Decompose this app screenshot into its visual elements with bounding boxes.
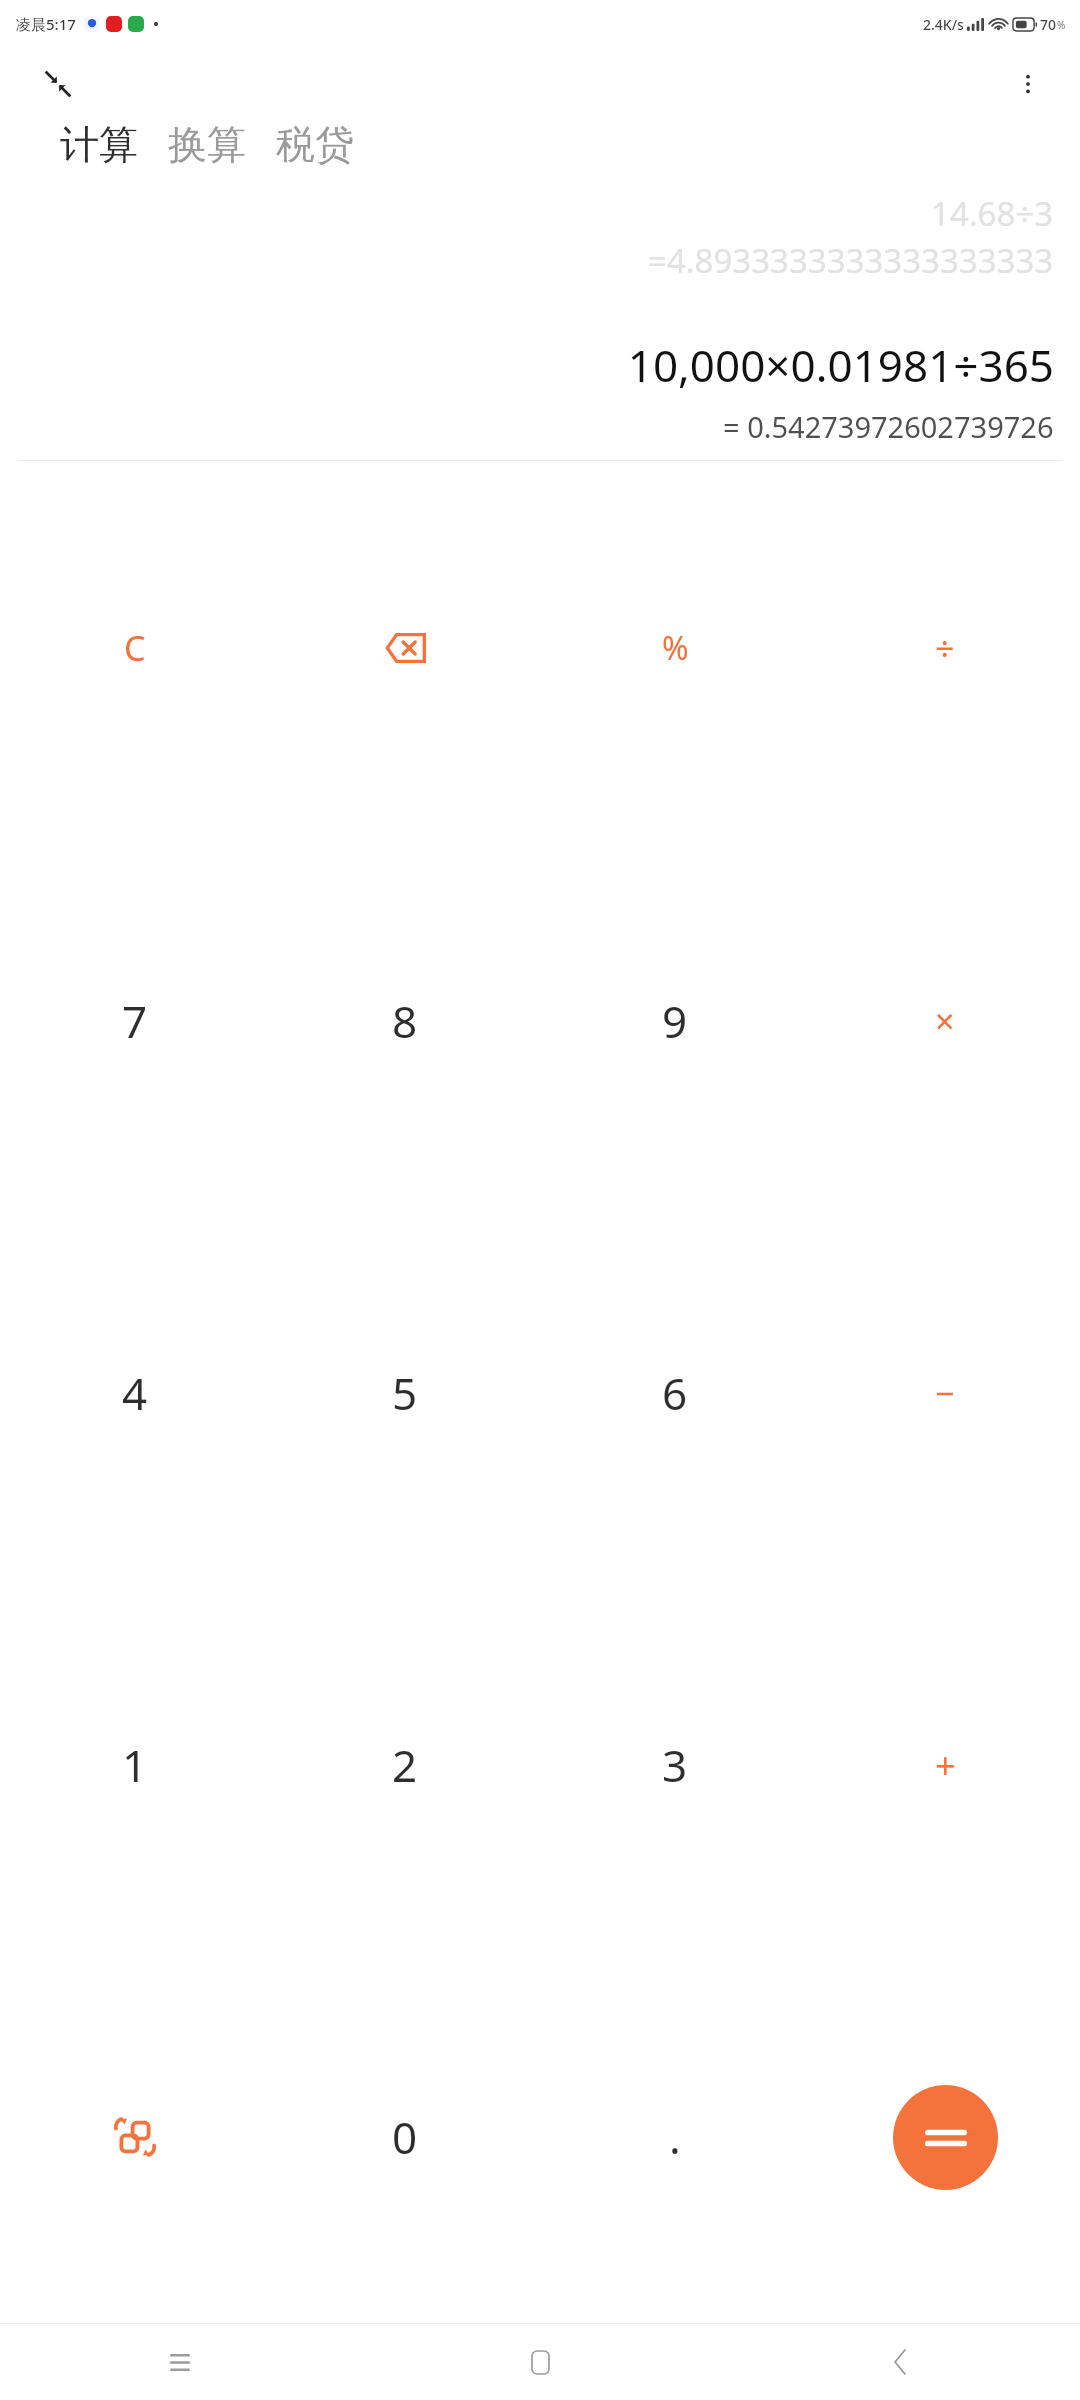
staticText: % (1057, 18, 1066, 32)
button[interactable]: Clear (0, 461, 270, 834)
button[interactable]: Minus (810, 1207, 1080, 1579)
button[interactable]: 7 (0, 834, 270, 1207)
button[interactable]: Multiply (810, 834, 1080, 1207)
staticText: 换算 (168, 120, 246, 169)
button[interactable]: Equals (810, 1951, 1080, 2323)
staticText: . (669, 2107, 681, 2167)
staticText: =4.8933333333333333333 (648, 238, 1054, 283)
button[interactable]: 换算 (168, 120, 246, 169)
staticText: C (124, 625, 146, 671)
staticText: % (662, 626, 689, 670)
staticText: 7 (122, 991, 148, 1051)
button[interactable]: Back (720, 2324, 1080, 2400)
staticText: ÷ (935, 625, 955, 671)
staticText: 6 (662, 1363, 688, 1423)
button[interactable]: 1 (0, 1579, 270, 1951)
staticText: × (935, 998, 955, 1044)
button[interactable]: 4 (0, 1207, 270, 1579)
button[interactable]: 2 (270, 1579, 540, 1951)
staticText: 2.4K/s (923, 15, 964, 34)
other: Unit convert (115, 2117, 155, 2157)
staticText: + (935, 1741, 956, 1790)
button[interactable]: Home (360, 2324, 720, 2400)
button[interactable]: Backspace (270, 461, 540, 834)
staticText: 14.68÷3 (931, 191, 1054, 236)
button[interactable]: More options (1004, 60, 1052, 108)
button[interactable]: 计算 (60, 120, 138, 169)
button[interactable]: Equals (893, 2085, 998, 2190)
button[interactable]: Plus (810, 1579, 1080, 1951)
button[interactable]: 税贷 (276, 120, 354, 169)
button[interactable]: Percent (540, 461, 810, 834)
staticText: 0 (392, 2107, 418, 2167)
staticText: 9 (662, 991, 688, 1051)
button[interactable]: Recents (0, 2324, 360, 2400)
staticText: 计算 (60, 120, 138, 169)
staticText: = 0.54273972602739726 (723, 407, 1054, 446)
button[interactable]: Unit convert (0, 1951, 270, 2323)
button[interactable]: 6 (540, 1207, 810, 1579)
button[interactable]: Divide (810, 461, 1080, 834)
other: Backspace (384, 633, 426, 663)
staticText: − (935, 1370, 955, 1416)
staticText: 2 (392, 1735, 418, 1795)
staticText: 1 (122, 1735, 148, 1795)
button[interactable]: 9 (540, 834, 810, 1207)
staticText: 4 (122, 1363, 148, 1423)
button[interactable]: 8 (270, 834, 540, 1207)
staticText: 3 (662, 1735, 688, 1795)
button[interactable]: Collapse (34, 60, 82, 108)
button[interactable]: 3 (540, 1579, 810, 1951)
staticText: 5 (392, 1363, 418, 1423)
staticText: 70 (1040, 15, 1057, 34)
staticText: 10,000×0.01981÷365 (26, 335, 1054, 395)
button[interactable]: 5 (270, 1207, 540, 1579)
staticText: 税贷 (276, 120, 354, 169)
staticText: 凌晨5:17 (16, 14, 76, 34)
staticText: 8 (392, 991, 418, 1051)
button[interactable]: 0 (270, 1951, 540, 2323)
